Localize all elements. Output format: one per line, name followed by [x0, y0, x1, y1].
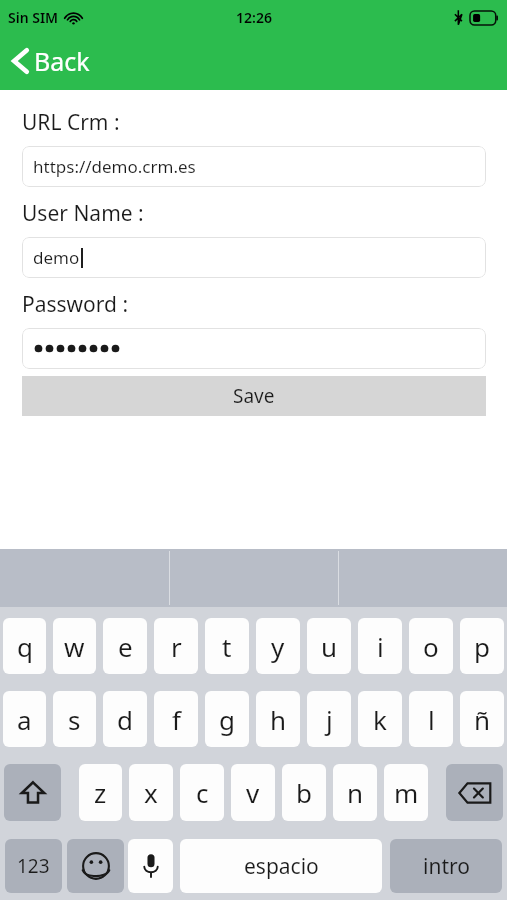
staticText: e: [118, 629, 133, 664]
button[interactable]: ñ: [460, 691, 504, 747]
button[interactable]: d: [103, 691, 147, 747]
staticText: demo: [33, 246, 80, 269]
button[interactable]: x: [129, 764, 173, 821]
button[interactable]: Backspace: [446, 764, 503, 821]
staticText: User Name :: [22, 199, 144, 228]
button[interactable]: 123: [5, 839, 62, 893]
button[interactable]: s: [53, 691, 96, 747]
staticText: p: [474, 629, 490, 664]
staticText: z: [94, 775, 107, 810]
staticText: c: [196, 775, 209, 810]
staticText: Password :: [22, 290, 129, 319]
staticText: a: [17, 702, 32, 737]
button[interactable]: g: [205, 691, 249, 747]
button[interactable]: demo: [22, 237, 486, 278]
staticText: h: [270, 702, 287, 737]
staticText: o: [423, 629, 439, 664]
staticText: Back: [34, 44, 90, 78]
staticText: g: [219, 702, 235, 737]
staticText: r: [171, 629, 182, 664]
button[interactable]: Back: [10, 40, 92, 82]
button[interactable]: b: [282, 764, 326, 821]
button[interactable]: m: [384, 764, 428, 821]
button[interactable]: https://demo.crm.es: [22, 146, 486, 187]
button[interactable]: n: [333, 764, 377, 821]
staticText: j: [326, 702, 333, 737]
staticText: s: [68, 702, 81, 737]
staticText: u: [321, 629, 338, 664]
button[interactable]: c: [180, 764, 224, 821]
staticText: k: [373, 702, 387, 737]
staticText: t: [222, 629, 232, 664]
button[interactable]: i: [358, 618, 402, 674]
button[interactable]: h: [256, 691, 300, 747]
button[interactable]: Shift: [4, 764, 61, 821]
staticText: v: [246, 775, 260, 810]
button[interactable]: v: [231, 764, 275, 821]
button[interactable]: r: [154, 618, 198, 674]
button[interactable]: intro: [390, 839, 502, 893]
button[interactable]: [22, 328, 486, 369]
button[interactable]: Dictation: [128, 839, 173, 893]
staticText: x: [144, 775, 158, 810]
staticText: intro: [423, 852, 470, 881]
staticText: l: [428, 702, 435, 737]
button[interactable]: z: [79, 764, 122, 821]
button[interactable]: Emoji: [67, 839, 124, 893]
button[interactable]: w: [53, 618, 96, 674]
staticText: espacio: [244, 852, 319, 881]
staticText: Save: [233, 383, 275, 409]
staticText: n: [347, 775, 364, 810]
button[interactable]: t: [205, 618, 249, 674]
button[interactable]: a: [3, 691, 46, 747]
staticText: f: [172, 702, 181, 737]
button[interactable]: k: [358, 691, 402, 747]
button[interactable]: p: [460, 618, 504, 674]
staticText: q: [17, 629, 33, 664]
button[interactable]: y: [256, 618, 300, 674]
button[interactable]: u: [307, 618, 351, 674]
staticText: 12:26: [236, 8, 272, 27]
staticText: b: [296, 775, 312, 810]
button[interactable]: j: [307, 691, 351, 747]
staticText: Sin SIM: [8, 8, 59, 27]
staticText: y: [271, 629, 285, 664]
button[interactable]: o: [409, 618, 453, 674]
staticText: i: [377, 629, 384, 664]
button[interactable]: espacio: [180, 839, 382, 893]
staticText: https://demo.crm.es: [33, 155, 196, 178]
staticText: URL Crm :: [22, 108, 120, 137]
button[interactable]: q: [3, 618, 46, 674]
button[interactable]: Save: [22, 376, 486, 416]
button[interactable]: e: [103, 618, 147, 674]
staticText: d: [117, 702, 133, 737]
staticText: w: [64, 629, 85, 664]
button[interactable]: l: [409, 691, 453, 747]
staticText: ñ: [474, 702, 491, 737]
staticText: m: [394, 775, 419, 810]
button[interactable]: f: [154, 691, 198, 747]
staticText: 123: [17, 853, 50, 879]
